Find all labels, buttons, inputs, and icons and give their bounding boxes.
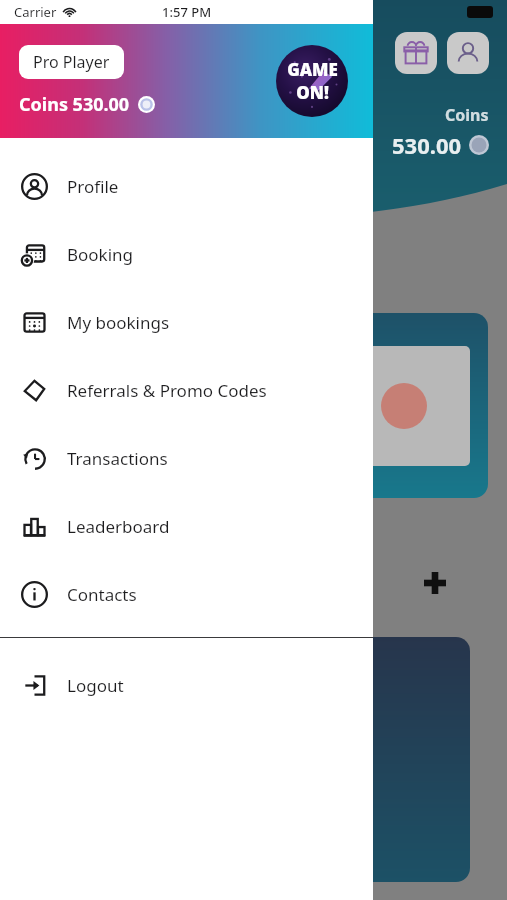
button[interactable]: Referrals & Promo Codes: [0, 356, 373, 424]
staticText: GAME: [287, 58, 338, 81]
staticText: Coins 530.00: [19, 92, 130, 117]
staticText: Pro Player: [33, 51, 110, 73]
staticText: 1:57 PM: [162, 3, 212, 21]
staticText: Booking: [67, 243, 134, 266]
staticText: ON!: [296, 81, 329, 104]
staticText: Leaderboard: [67, 515, 170, 538]
staticText: Referrals & Promo Codes: [67, 379, 267, 402]
staticText: My bookings: [67, 311, 170, 334]
staticText: Carrier: [14, 3, 57, 21]
button[interactable]: Leaderboard: [0, 492, 373, 560]
button[interactable]: Contacts: [0, 560, 373, 628]
button[interactable]: Profile: [0, 152, 373, 220]
staticText: Contacts: [67, 583, 137, 606]
button[interactable]: My bookings: [0, 288, 373, 356]
staticText: Logout: [67, 674, 124, 697]
button[interactable]: Transactions: [0, 424, 373, 492]
staticText: Profile: [67, 175, 119, 198]
button[interactable]: Action: [395, 32, 437, 74]
staticText: Transactions: [67, 447, 168, 470]
staticText: 530.00: [392, 130, 462, 160]
staticText: Coins: [445, 104, 489, 126]
button[interactable]: Booking: [0, 220, 373, 288]
button[interactable]: Action: [447, 32, 489, 74]
button[interactable]: Pro Player: [19, 45, 124, 79]
button[interactable]: Logout: [0, 651, 373, 719]
